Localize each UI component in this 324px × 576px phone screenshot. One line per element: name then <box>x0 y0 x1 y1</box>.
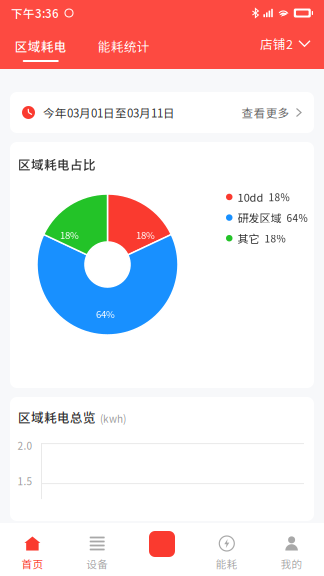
staticText: 2.0 <box>17 438 32 453</box>
staticText: 1.5 <box>17 474 32 488</box>
staticText: 能耗统计 <box>98 37 150 55</box>
button[interactable]: 查看更多 <box>241 104 301 121</box>
staticText: 能耗 <box>216 556 238 571</box>
button[interactable]: 区域耗电 <box>0 26 83 69</box>
staticText: 10dd <box>237 189 263 205</box>
staticText: 区域耗电占比 <box>18 155 96 173</box>
button[interactable]: 能耗统计 <box>81 26 166 69</box>
staticText: 下午3:36 <box>11 5 59 21</box>
staticText: 18% <box>136 228 155 242</box>
button[interactable]: 我的 <box>259 523 324 576</box>
staticText: 18% <box>264 231 285 245</box>
staticText: 区域耗电总览 <box>18 408 96 426</box>
staticText: 18% <box>268 190 289 204</box>
button[interactable]: 首页 <box>0 523 65 576</box>
staticText: 店铺2 <box>260 34 293 53</box>
staticText: 64% <box>96 307 115 321</box>
button[interactable]: 店铺2 <box>260 34 324 61</box>
button[interactable]: 设备 <box>65 523 130 576</box>
staticText: 区域耗电 <box>15 37 67 55</box>
staticText: 今年03月01日至03月11日 <box>43 104 175 121</box>
staticText: 首页 <box>21 556 43 571</box>
staticText: 查看更多 <box>241 104 289 121</box>
button[interactable]: 扫一扫 <box>130 523 194 576</box>
staticText: 其它 <box>237 230 259 246</box>
staticText: (kwh) <box>100 411 126 426</box>
staticText: 我的 <box>281 556 303 571</box>
button[interactable]: 能耗 <box>194 523 259 576</box>
staticText: 研发区域 <box>237 210 281 225</box>
staticText: 18% <box>60 228 79 242</box>
staticText: 64% <box>286 210 307 225</box>
staticText: 设备 <box>86 556 108 571</box>
